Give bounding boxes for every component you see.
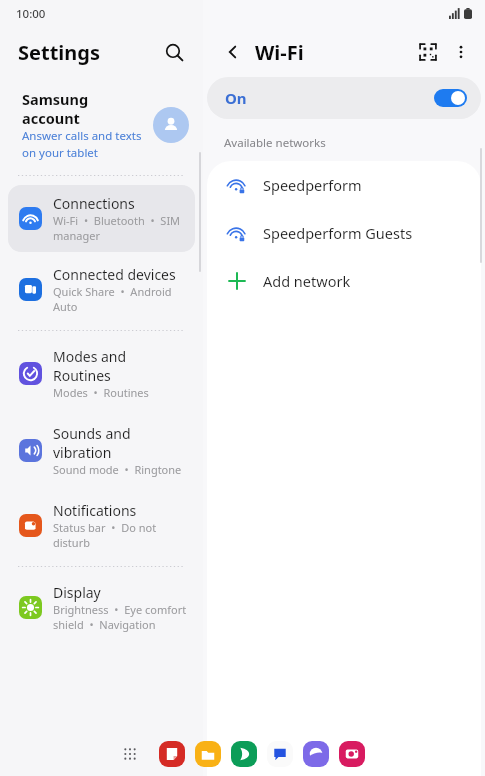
button[interactable]: Camera — [339, 741, 365, 767]
staticText: Connected devices — [53, 265, 176, 284]
staticText: Display — [53, 583, 101, 602]
staticText: Quick Share • Android Auto — [53, 284, 187, 314]
button[interactable]: Search — [157, 35, 191, 69]
button[interactable]: Speedperform Guests — [207, 209, 481, 257]
button[interactable]: Connected devices — [8, 256, 195, 323]
staticText: Sound mode • Ringtone — [53, 462, 182, 477]
button[interactable]: My Files — [195, 741, 221, 767]
staticText: Modes and Routines — [53, 347, 187, 385]
staticText: Answer calls and texts on your tablet — [22, 128, 149, 160]
staticText: Wi-Fi — [255, 39, 304, 66]
staticText: Add network — [263, 271, 351, 291]
staticText: Samsung account — [22, 89, 149, 128]
button[interactable]: On — [207, 77, 481, 119]
staticText: Status bar • Do not disturb — [53, 520, 187, 550]
staticText: Connections — [53, 194, 135, 213]
staticText: Sounds and vibration — [53, 424, 187, 462]
button[interactable]: Apps — [115, 739, 145, 769]
staticText: Brightness • Eye comfort shield • Naviga… — [53, 602, 187, 632]
button[interactable]: Messages — [267, 741, 293, 767]
button[interactable]: Modes and Routines — [8, 338, 195, 409]
button[interactable]: Connections — [8, 185, 195, 252]
button[interactable]: Sounds and vibration — [8, 415, 195, 486]
button[interactable]: Scan QR code — [411, 35, 445, 69]
button[interactable]: Notes — [159, 741, 185, 767]
button[interactable]: Phone — [231, 741, 257, 767]
button[interactable]: Samsung account — [0, 86, 203, 163]
staticText: Speedperform — [263, 175, 362, 195]
staticText: Available networks — [224, 135, 326, 151]
button[interactable]: Speedperform — [207, 161, 481, 209]
staticText: Speedperform Guests — [263, 223, 413, 243]
button[interactable]: Notifications — [8, 492, 195, 559]
button[interactable]: Back — [217, 36, 249, 68]
staticText: Wi-Fi • Bluetooth • SIM manager — [53, 213, 187, 243]
staticText: Modes • Routines — [53, 385, 149, 400]
button[interactable]: Add network — [207, 257, 481, 305]
button[interactable]: More options — [445, 36, 477, 68]
staticText: 10:00 — [16, 6, 46, 22]
staticText: Notifications — [53, 501, 137, 520]
button[interactable]: Display — [8, 574, 195, 641]
button[interactable]: Internet — [303, 741, 329, 767]
staticText: On — [225, 88, 247, 108]
staticText: Settings — [18, 39, 100, 66]
